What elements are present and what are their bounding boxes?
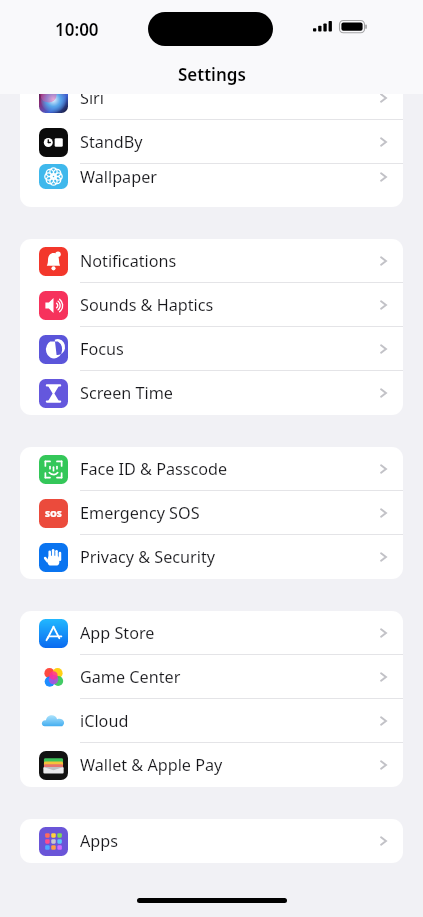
button[interactable]: Focus	[20, 327, 403, 371]
staticText: Focus	[80, 338, 378, 360]
staticText: Notifications	[80, 250, 378, 272]
staticText: Face ID & Passcode	[80, 458, 378, 480]
staticText: StandBy	[80, 131, 378, 153]
button[interactable]: Wallet & Apple Pay	[20, 743, 403, 787]
button[interactable]: Wallpaper	[20, 164, 403, 189]
staticText: 10:00	[55, 18, 99, 41]
staticText: iCloud	[80, 710, 378, 732]
button[interactable]: Sounds & Haptics	[20, 283, 403, 327]
button[interactable]: Game Center	[20, 655, 403, 699]
button[interactable]: StandBy	[20, 120, 403, 164]
button[interactable]: App Store	[20, 611, 403, 655]
staticText: Privacy & Security	[80, 546, 378, 568]
staticText: Game Center	[80, 666, 378, 688]
staticText: Wallpaper	[80, 166, 378, 188]
button[interactable]: Notifications	[20, 239, 403, 283]
button[interactable]: Face ID & Passcode	[20, 447, 403, 491]
button[interactable]: iCloud	[20, 699, 403, 743]
staticText: Wallet & Apple Pay	[80, 754, 378, 776]
staticText: Siri	[80, 94, 378, 109]
button[interactable]: Privacy & Security	[20, 535, 403, 579]
button[interactable]: Screen Time	[20, 371, 403, 415]
staticText: Emergency SOS	[80, 502, 378, 524]
button[interactable]: SOS	[20, 491, 403, 535]
staticText: Screen Time	[80, 382, 378, 404]
staticText: Sounds & Haptics	[80, 294, 378, 316]
staticText: Apps	[80, 830, 378, 852]
button[interactable]: Siri	[20, 94, 403, 120]
button[interactable]: Apps	[20, 819, 403, 863]
staticText: Settings	[178, 63, 246, 86]
staticText: App Store	[80, 622, 378, 644]
staticText: SOS	[45, 508, 62, 520]
